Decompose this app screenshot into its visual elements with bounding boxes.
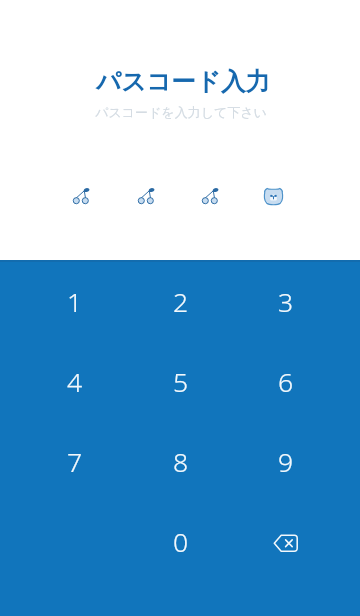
staticText: 5	[173, 364, 189, 400]
staticText: 2	[173, 284, 189, 320]
staticText: 0	[173, 524, 189, 560]
button[interactable]: 7	[22, 422, 128, 502]
staticText: パスコード入力	[3, 66, 360, 97]
staticText: 6	[278, 364, 294, 400]
button[interactable]: Backspace	[233, 502, 338, 582]
staticText: 1	[67, 284, 83, 320]
button[interactable]: 9	[233, 422, 338, 502]
button[interactable]: 2	[128, 262, 233, 342]
staticText: 8	[173, 444, 189, 480]
staticText: 7	[67, 444, 83, 480]
button[interactable]: 3	[233, 262, 338, 342]
staticText: 4	[67, 364, 83, 400]
staticText: パスコードを入力して下さい	[1, 104, 360, 120]
button[interactable]: 0	[128, 502, 233, 582]
staticText: 3	[278, 284, 294, 320]
button[interactable]: 8	[128, 422, 233, 502]
button[interactable]: 4	[22, 342, 128, 422]
button[interactable]: 1	[22, 262, 128, 342]
button[interactable]: 5	[128, 342, 233, 422]
button[interactable]: 6	[233, 342, 338, 422]
staticText: 9	[278, 444, 294, 480]
